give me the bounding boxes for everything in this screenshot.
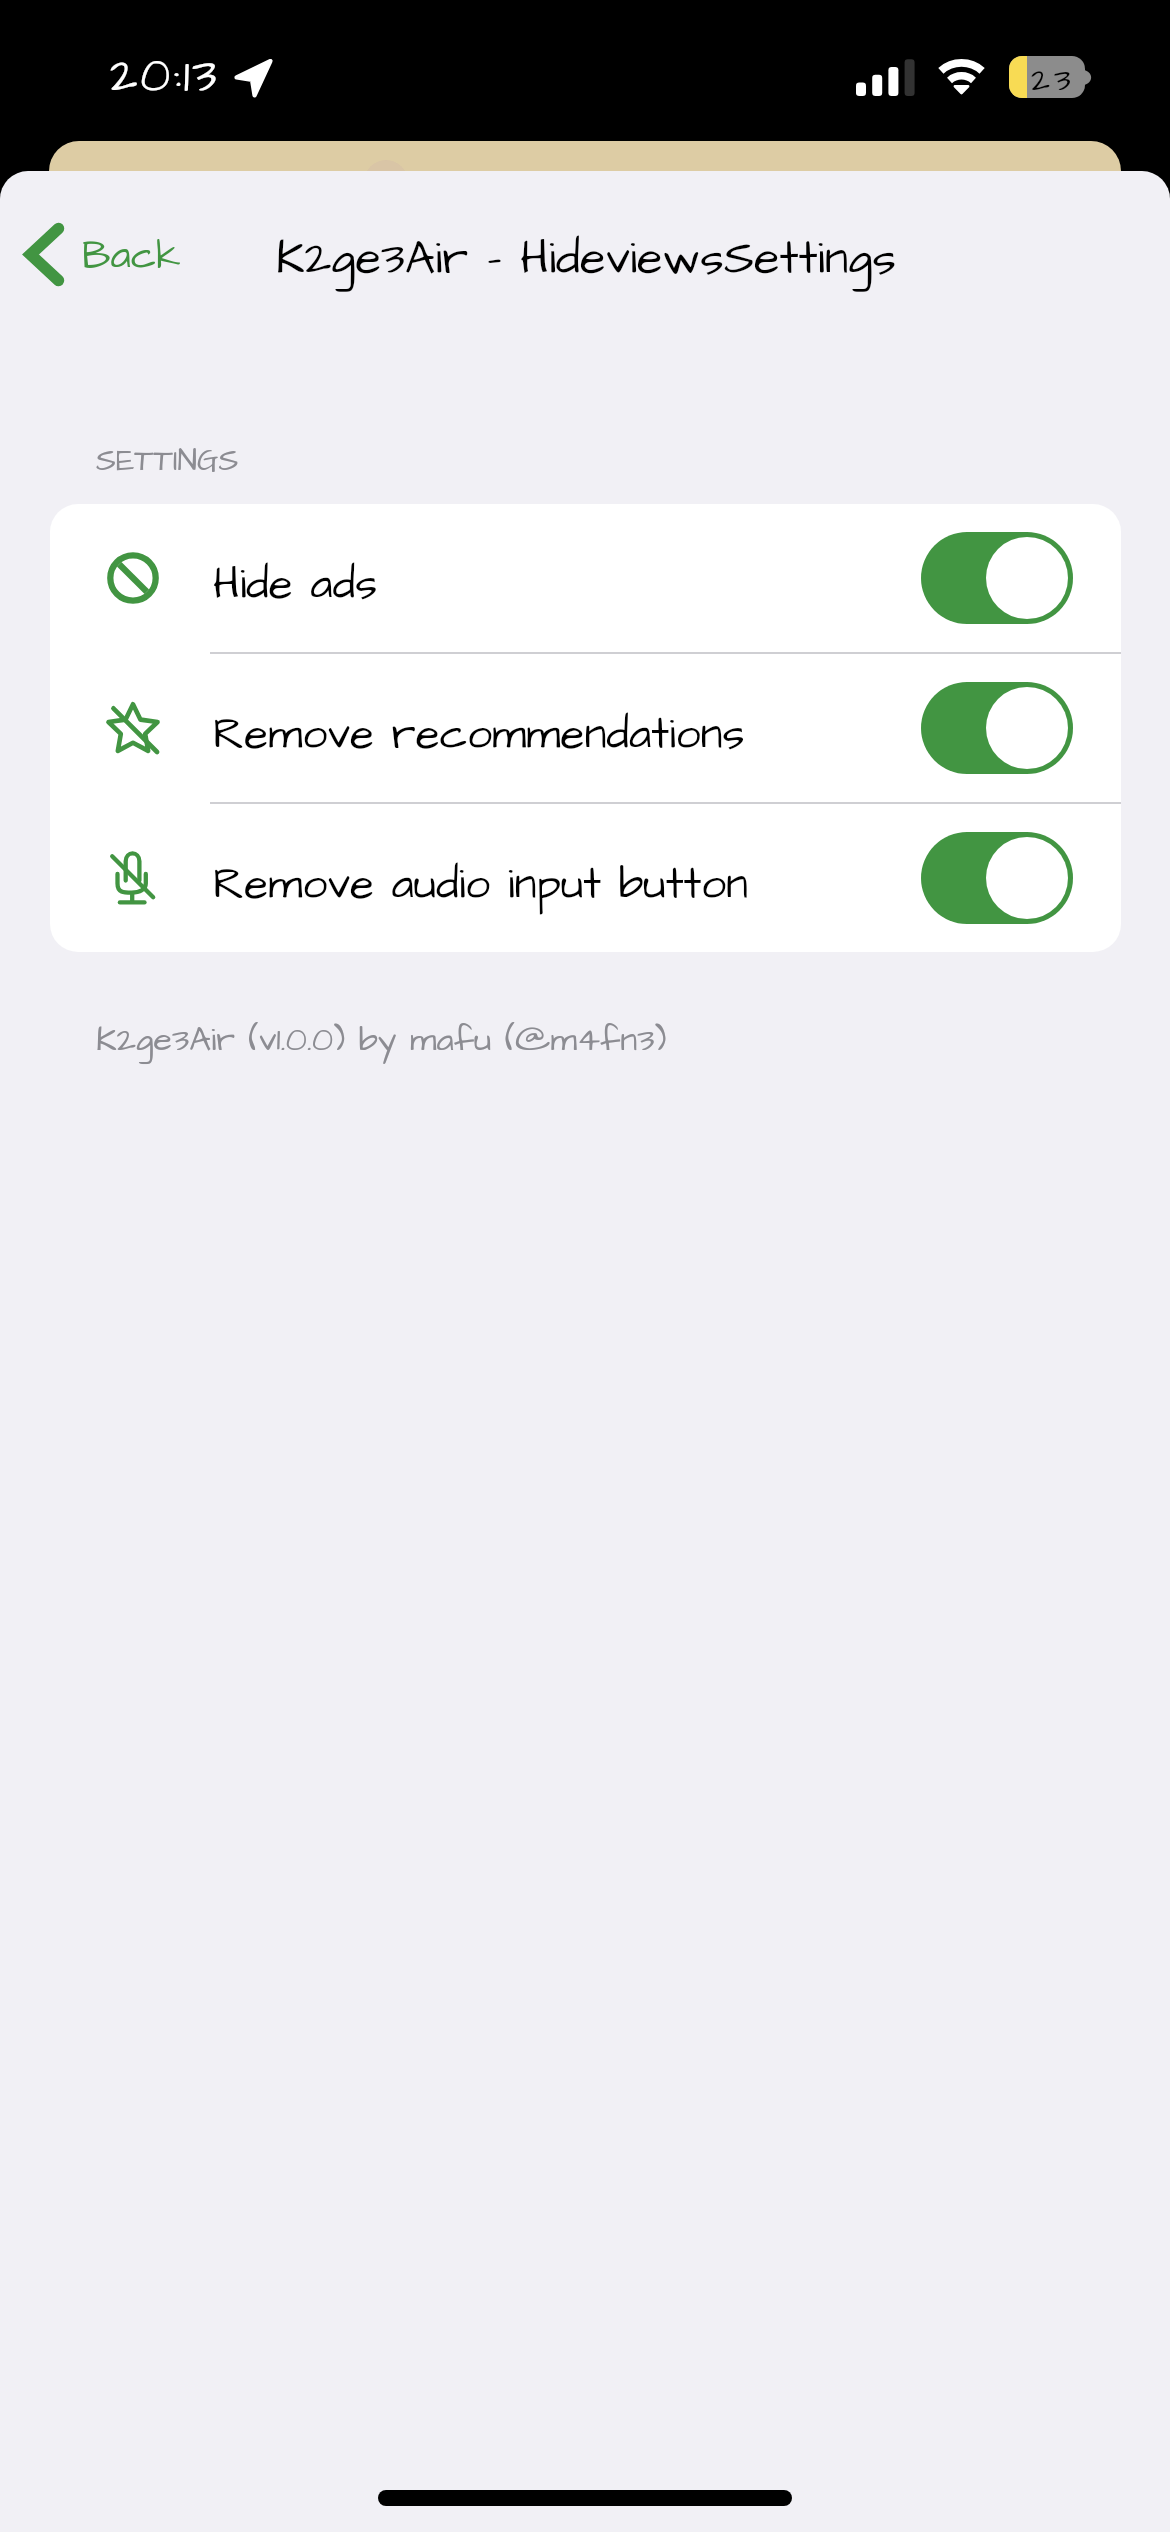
staticText: 20:13 xyxy=(110,44,220,111)
button[interactable]: Toggle xyxy=(921,682,1073,774)
staticText: 23 xyxy=(1031,57,1075,98)
button[interactable]: Remove recommendations xyxy=(50,654,1121,802)
button[interactable]: Toggle xyxy=(921,832,1073,924)
staticText: Remove recommendations xyxy=(213,705,745,766)
button[interactable]: Toggle xyxy=(921,532,1073,624)
staticText: K2ge3Air (v1.0.0) by mafu (@m4fn3) xyxy=(96,1016,667,1063)
staticText: Remove audio input button xyxy=(213,855,749,916)
button[interactable]: Back xyxy=(14,211,193,299)
staticText: K2ge3Air - HideviewsSettings xyxy=(276,227,896,292)
button[interactable]: Remove audio input button xyxy=(50,804,1121,952)
staticText: SETTINGS xyxy=(96,439,239,482)
staticText: Hide ads xyxy=(213,555,378,616)
staticText: Back xyxy=(82,229,181,285)
button[interactable]: Hide ads xyxy=(50,504,1121,652)
